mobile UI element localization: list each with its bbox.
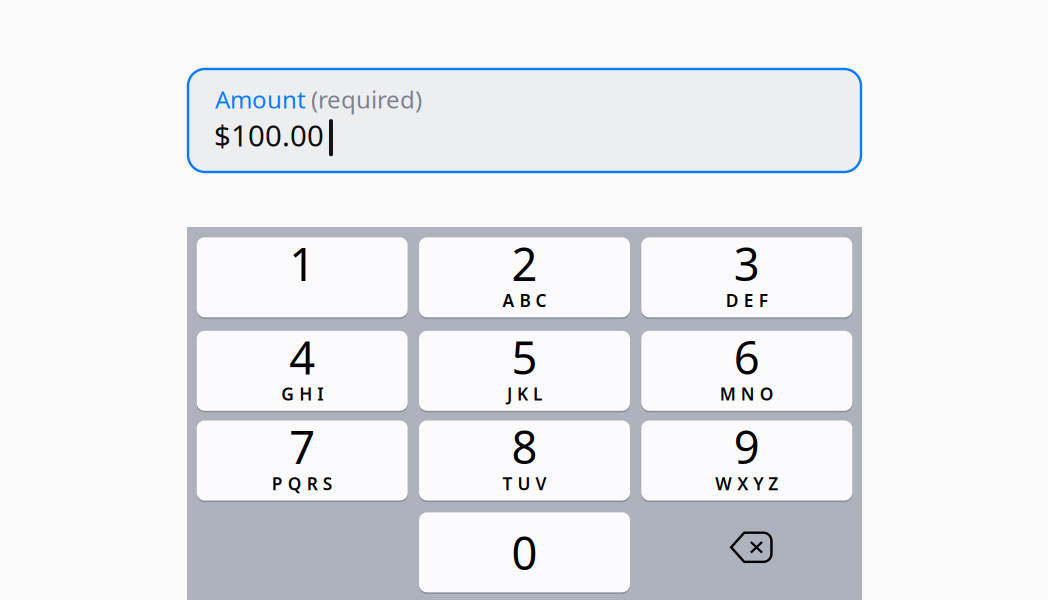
staticText: 9	[734, 416, 760, 477]
button[interactable]: 8	[419, 420, 630, 500]
staticText: 4	[289, 327, 315, 387]
staticText: A B C	[502, 289, 546, 312]
staticText: D E F	[726, 289, 768, 312]
button[interactable]: 9	[641, 420, 852, 500]
button[interactable]: 1	[197, 237, 408, 317]
button[interactable]: 3	[641, 237, 852, 317]
button[interactable]: Delete	[641, 512, 852, 592]
button[interactable]: 0	[419, 512, 630, 592]
staticText: 2	[511, 233, 537, 293]
staticText: (required)	[311, 83, 422, 115]
staticText: 6	[734, 327, 760, 387]
staticText: 3	[734, 233, 760, 293]
staticText: T U V	[502, 472, 546, 495]
button[interactable]: 5	[419, 331, 630, 411]
staticText: 7	[289, 416, 315, 477]
button[interactable]: 7	[197, 420, 408, 500]
staticText: 5	[511, 327, 537, 387]
staticText: J K L	[507, 382, 542, 405]
staticText: M N O	[720, 382, 774, 405]
button[interactable]: 6	[641, 331, 852, 411]
staticText: 0	[511, 522, 537, 582]
staticText: 8	[511, 416, 537, 477]
staticText: G H I	[281, 382, 323, 405]
staticText: $100.00	[214, 116, 324, 155]
button[interactable]: 4	[197, 331, 408, 411]
staticText: P Q R S	[272, 472, 333, 495]
button[interactable]: 2	[419, 237, 630, 317]
staticText: 1	[289, 233, 315, 293]
staticText: W X Y Z	[715, 472, 778, 495]
staticText: Amount	[215, 83, 306, 115]
